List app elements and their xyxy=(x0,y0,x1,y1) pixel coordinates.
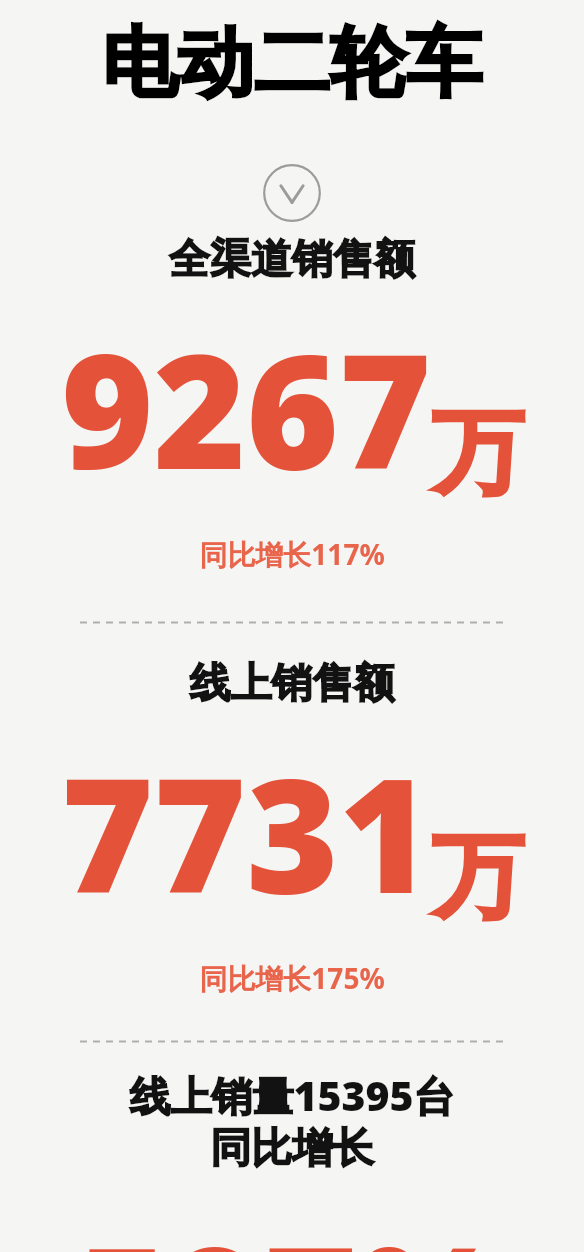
staticText: 597% xyxy=(76,1192,509,1252)
staticText: 9267 xyxy=(61,300,432,515)
staticText: 电动二轮车 xyxy=(0,16,584,112)
staticText: 全渠道销售额 xyxy=(0,234,584,286)
staticText: 7731 xyxy=(61,724,432,939)
staticText: 万 xyxy=(432,395,524,511)
staticText: 线上销量15395台 同比增长 xyxy=(0,1067,584,1174)
staticText: 同比增长175% xyxy=(0,959,584,997)
staticText: 线上销售额 xyxy=(0,658,584,710)
staticText: 万 xyxy=(432,819,524,935)
staticText: 同比增长117% xyxy=(0,535,584,573)
button[interactable]: 展开更多 xyxy=(263,164,321,222)
